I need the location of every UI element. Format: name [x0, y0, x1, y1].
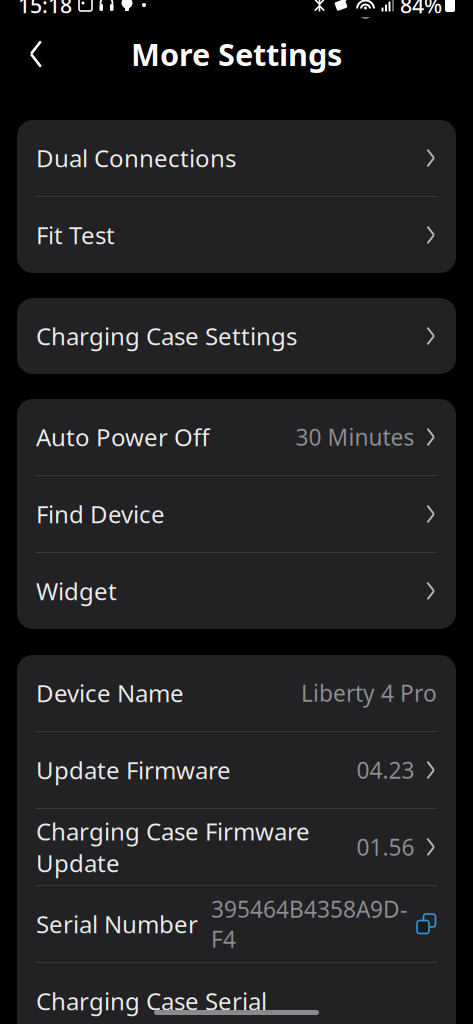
staticText: 84% — [400, 0, 442, 19]
staticText: Update Firmware — [36, 754, 231, 786]
button[interactable]: Charging Case Serial — [17, 963, 456, 1024]
staticText: Fit Test — [36, 219, 115, 251]
button[interactable]: Auto Power Off — [17, 399, 456, 475]
staticText: 30 Minutes — [295, 422, 414, 452]
button[interactable]: Update Firmware — [17, 732, 456, 808]
staticText: 01.56 — [356, 832, 414, 862]
button[interactable]: Charging Case Firmware Update — [17, 809, 456, 885]
staticText: Auto Power Off — [36, 421, 210, 453]
button[interactable]: Find Device — [17, 476, 456, 552]
staticText: Liberty 4 Pro — [301, 678, 437, 708]
staticText: Charging Case Firmware Update — [36, 815, 310, 879]
staticText: Device Name — [36, 677, 184, 709]
button[interactable]: Back — [13, 31, 59, 77]
button[interactable]: Dual Connections — [17, 120, 456, 196]
button[interactable]: Charging Case Settings — [17, 298, 456, 374]
staticText: 04.23 — [356, 755, 414, 785]
staticText: 15:18 — [18, 0, 72, 19]
staticText: More Settings — [131, 34, 342, 74]
button[interactable]: Widget — [17, 553, 456, 629]
button[interactable]: Serial Number — [17, 886, 456, 962]
staticText: Dual Connections — [36, 142, 236, 174]
button[interactable]: Fit Test — [17, 197, 456, 273]
staticText: Charging Case Settings — [36, 320, 297, 352]
staticText: Serial Number — [36, 908, 198, 940]
staticText: 395464B4358A9DF4 — [211, 894, 407, 954]
staticText: Charging Case Serial — [36, 985, 267, 1017]
staticText: Widget — [36, 575, 117, 607]
button[interactable]: Device Name — [17, 655, 456, 731]
staticText: Find Device — [36, 498, 165, 530]
